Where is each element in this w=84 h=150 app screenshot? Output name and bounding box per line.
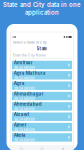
staticText: Select a State or City xyxy=(13,40,47,44)
button[interactable]: Amritsar xyxy=(12,61,72,69)
button[interactable]: Ajmer xyxy=(12,123,72,131)
staticText: Amritsar xyxy=(14,60,33,65)
staticText: Enter the City Name xyxy=(13,53,46,57)
staticText: State xyxy=(36,46,47,51)
button[interactable]: Akola xyxy=(12,133,72,142)
button[interactable]: Back xyxy=(52,145,73,150)
staticText: Akola xyxy=(14,132,26,138)
staticText: 38.24 Million xyxy=(14,107,35,111)
button[interactable]: Agra Mathura xyxy=(12,71,72,79)
staticText: 38.24 Million xyxy=(14,128,35,132)
staticText: 38.24 Million xyxy=(14,76,35,80)
staticText: State and City data in one xyxy=(3,1,81,8)
staticText: Aizawl xyxy=(14,112,29,117)
staticText: application xyxy=(25,9,59,16)
button[interactable]: Ahmedabad xyxy=(12,102,72,110)
button[interactable]: Agra xyxy=(12,81,72,90)
staticText: Ahmadnagar xyxy=(14,91,44,96)
button[interactable]: Recent apps xyxy=(11,145,31,150)
staticText: Agra xyxy=(14,81,25,86)
button[interactable]: Ahmadnagar xyxy=(12,92,72,100)
staticText: Agra Mathura xyxy=(14,70,46,76)
staticText: 38.24 Million xyxy=(14,86,35,91)
button[interactable]: Aizawl xyxy=(12,112,72,121)
staticText: 36.44 Million xyxy=(14,65,35,70)
staticText: 38.24 Million xyxy=(14,138,35,142)
button[interactable]: Home xyxy=(32,145,52,150)
staticText: Ahmedabad xyxy=(14,101,42,107)
staticText: 38.24 Million xyxy=(14,117,35,122)
staticText: 38.24 Million xyxy=(14,96,35,101)
staticText: Ajmer xyxy=(14,122,27,128)
